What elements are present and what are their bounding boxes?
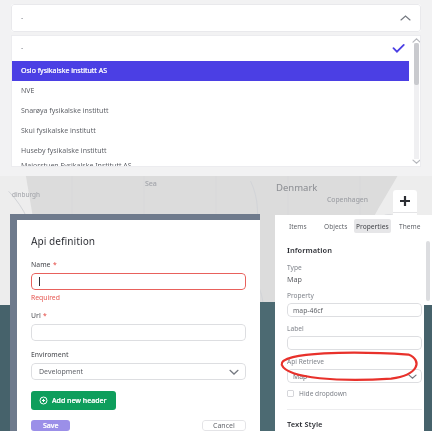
staticText: * xyxy=(43,311,47,320)
staticText: Map xyxy=(287,274,302,284)
button[interactable]: Objects xyxy=(317,219,354,233)
staticText: Enviroment xyxy=(31,350,69,359)
staticText: Required xyxy=(31,293,60,302)
button[interactable]: Map xyxy=(287,369,422,383)
staticText: Api definition xyxy=(31,234,96,248)
staticText: Api Retrieve xyxy=(287,357,324,366)
button[interactable]: Properties xyxy=(354,219,391,233)
staticText: NVE xyxy=(21,86,35,96)
staticText: Label xyxy=(287,324,304,333)
button[interactable]: Skui fysikalske institutt xyxy=(11,121,421,141)
staticText: Information xyxy=(287,245,332,255)
button[interactable]: Items xyxy=(279,219,317,233)
button[interactable]: Hide dropdown xyxy=(287,389,347,398)
staticText: Huseby fysikalske institutt xyxy=(21,146,107,156)
staticText: - xyxy=(21,43,24,53)
staticText: Snarøya fysikalske institutt xyxy=(21,106,109,116)
staticText: * xyxy=(53,260,57,269)
staticText: Add new header xyxy=(52,396,107,406)
button[interactable]: NVE xyxy=(11,81,421,101)
button[interactable]: Development xyxy=(31,363,246,380)
staticText: Hide dropdown xyxy=(299,389,347,398)
button[interactable]: Add new header xyxy=(31,391,116,410)
button[interactable]: Zoom out xyxy=(393,213,417,229)
button[interactable]: Oslo fysikalske institutt AS xyxy=(11,61,409,81)
button[interactable]: Huseby fysikalske institutt xyxy=(11,141,421,161)
button[interactable]: Zoom in xyxy=(393,190,417,212)
button[interactable]: Majorstuen Fysikalske Institutt AS xyxy=(11,161,421,167)
button[interactable]: Snarøya fysikalske institutt xyxy=(11,101,421,121)
staticText: Type xyxy=(287,263,302,272)
button[interactable] xyxy=(31,273,246,290)
button[interactable]: - xyxy=(11,4,421,32)
staticText: Skui fysikalske institutt xyxy=(21,126,96,136)
staticText: Cancel xyxy=(213,421,235,431)
button[interactable]: Cancel xyxy=(202,420,246,431)
staticText: dinburgh xyxy=(12,190,40,199)
staticText: Theme xyxy=(399,222,421,231)
button[interactable]: - xyxy=(11,35,421,61)
staticText: Copenhagen xyxy=(327,195,368,204)
staticText: Url xyxy=(31,311,41,320)
button[interactable] xyxy=(31,324,246,341)
staticText: Save xyxy=(43,421,59,431)
button[interactable]: map-46cf xyxy=(287,303,422,317)
staticText: Sea xyxy=(145,179,157,189)
staticText: Development xyxy=(39,367,84,377)
staticText: - xyxy=(21,13,24,23)
staticText: Map xyxy=(293,372,308,381)
staticText: Majorstuen Fysikalske Institutt AS xyxy=(21,161,132,167)
button[interactable]: Theme xyxy=(391,219,428,233)
staticText: Property xyxy=(287,291,314,300)
staticText: Denmark xyxy=(276,181,318,194)
staticText: Properties xyxy=(356,222,389,231)
button[interactable] xyxy=(287,336,422,350)
staticText: Items xyxy=(289,222,307,231)
staticText: Oslo fysikalske institutt AS xyxy=(21,66,108,76)
staticText: Text Style xyxy=(287,419,323,429)
staticText: map-46cf xyxy=(293,306,323,315)
staticText: Name xyxy=(31,260,51,269)
staticText: Objects xyxy=(324,222,348,231)
button[interactable]: Save xyxy=(31,420,70,431)
